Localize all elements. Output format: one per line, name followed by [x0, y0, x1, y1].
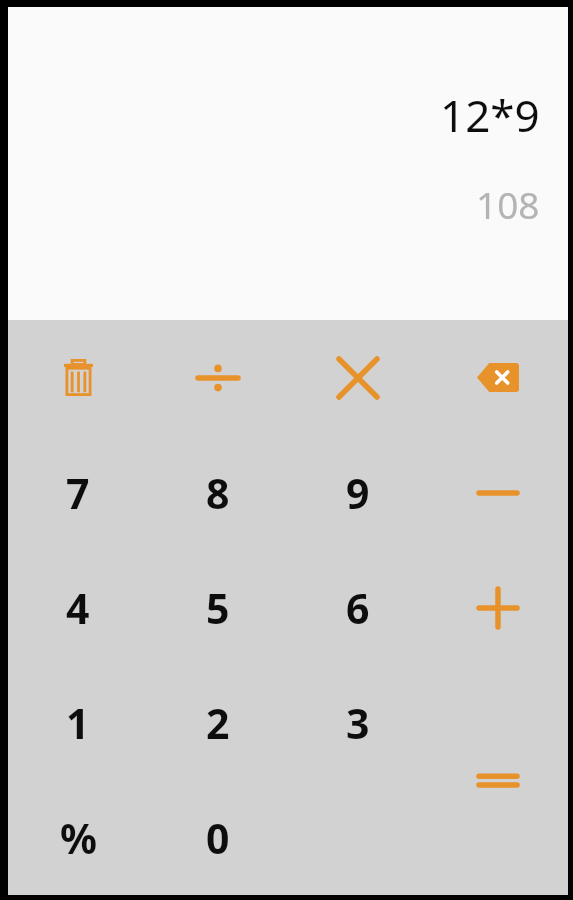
staticText: 2: [206, 695, 230, 751]
staticText: 9: [346, 465, 370, 521]
button[interactable]: Clear all: [8, 320, 148, 435]
button[interactable]: 3: [288, 665, 428, 780]
button[interactable]: 4: [8, 550, 148, 665]
button[interactable]: Equals: [428, 665, 568, 895]
button[interactable]: 7: [8, 435, 148, 550]
button[interactable]: Plus: [428, 550, 568, 665]
button[interactable]: 9: [288, 435, 428, 550]
button[interactable]: Multiply: [288, 320, 428, 435]
staticText: 7: [66, 465, 90, 521]
button[interactable]: Divide: [148, 320, 288, 435]
button[interactable]: 6: [288, 550, 428, 665]
staticText: 6: [346, 580, 370, 636]
staticText: 3: [346, 695, 370, 751]
button[interactable]: %: [8, 780, 148, 895]
staticText: 12*9: [440, 85, 540, 145]
button[interactable]: 0: [148, 780, 288, 895]
button[interactable]: 8: [148, 435, 288, 550]
button[interactable]: Minus: [428, 435, 568, 550]
button[interactable]: 5: [148, 550, 288, 665]
staticText: 0: [206, 810, 230, 866]
staticText: 1: [66, 695, 90, 751]
staticText: 8: [206, 465, 230, 521]
staticText: %: [60, 810, 97, 866]
staticText: 108: [476, 179, 540, 229]
button[interactable]: 2: [148, 665, 288, 780]
staticText: 4: [66, 580, 90, 636]
staticText: 5: [206, 580, 230, 636]
button[interactable]: 1: [8, 665, 148, 780]
button[interactable]: Backspace: [428, 320, 568, 435]
